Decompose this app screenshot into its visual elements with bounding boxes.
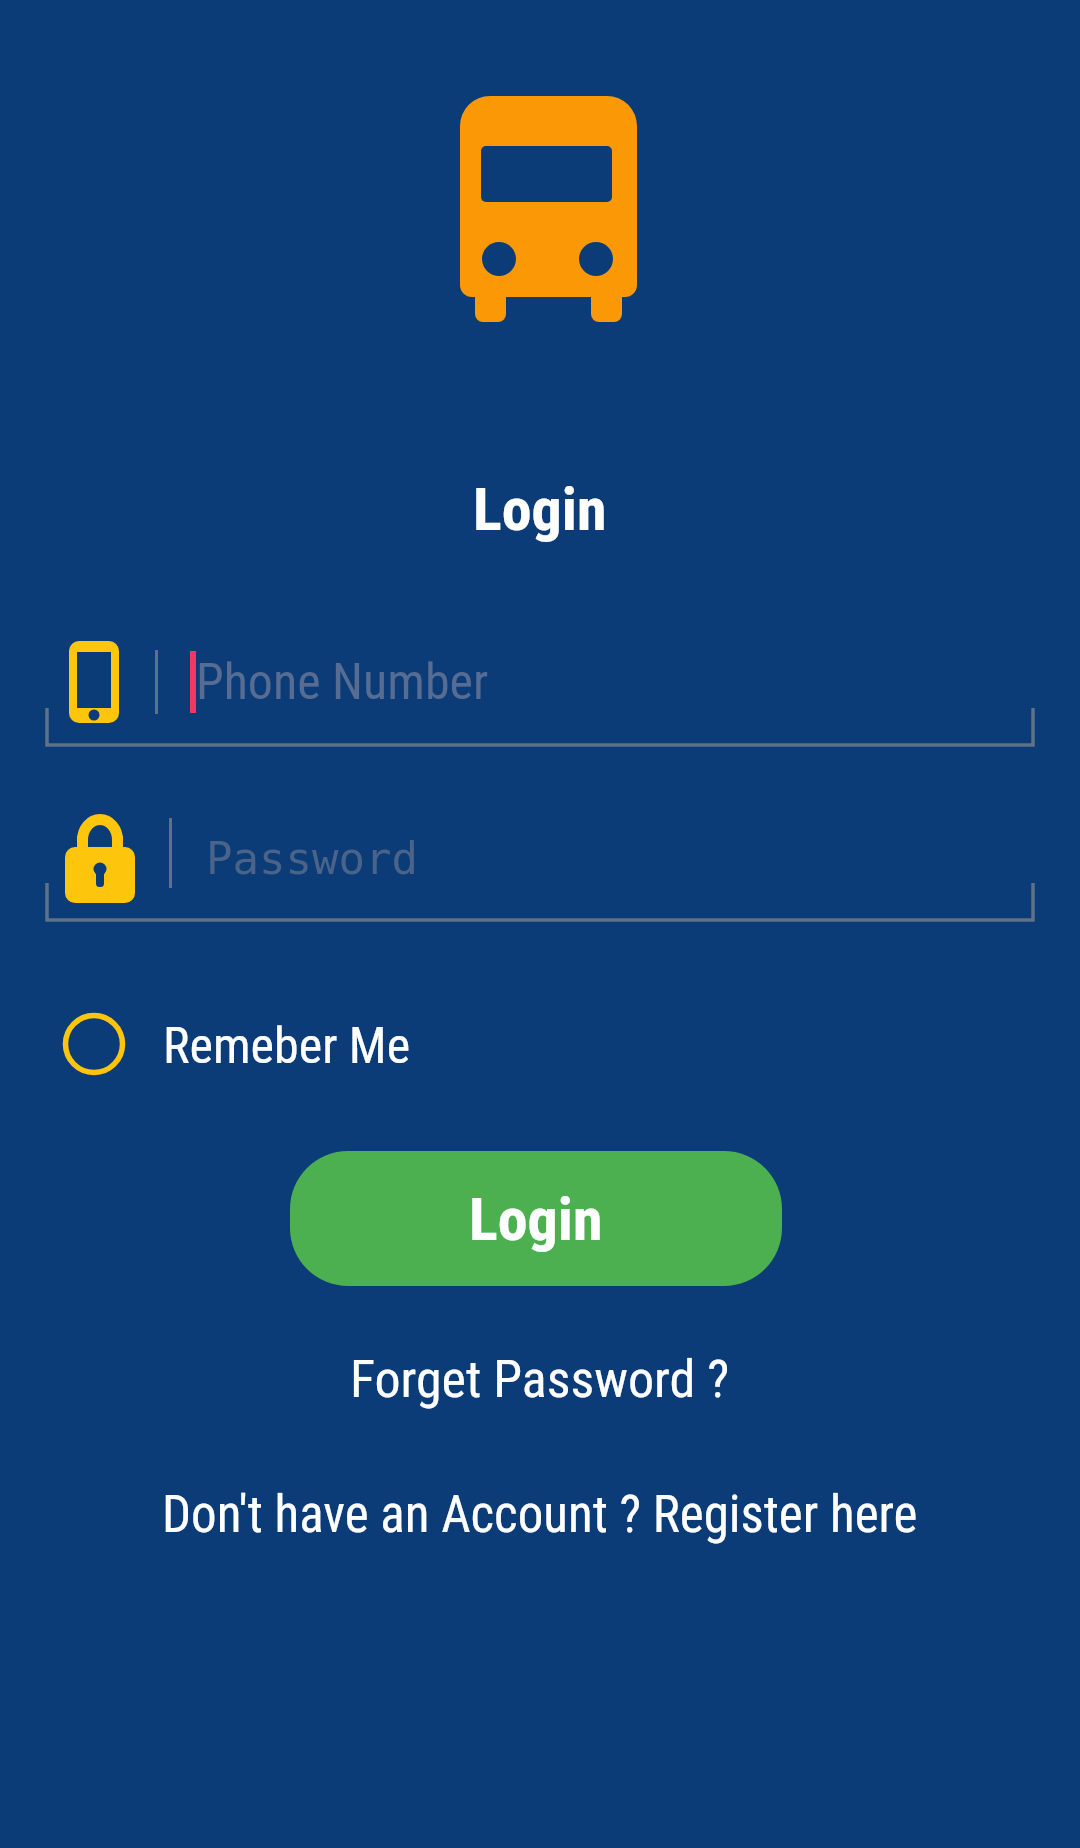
button[interactable]: Remeber Me bbox=[55, 1008, 435, 1080]
button[interactable]: Forget Password ? bbox=[350, 1349, 730, 1410]
button[interactable]: Phone Number bbox=[196, 653, 489, 712]
button[interactable]: Password bbox=[206, 833, 418, 884]
button[interactable]: Login bbox=[290, 1151, 782, 1286]
staticText: Remeber Me bbox=[163, 1017, 411, 1076]
staticText: Login bbox=[469, 1184, 603, 1254]
staticText: Login bbox=[473, 474, 607, 544]
button[interactable]: Don't have an Account ? Register here bbox=[162, 1485, 918, 1545]
button[interactable] bbox=[47, 640, 1033, 746]
button[interactable] bbox=[47, 808, 1033, 921]
